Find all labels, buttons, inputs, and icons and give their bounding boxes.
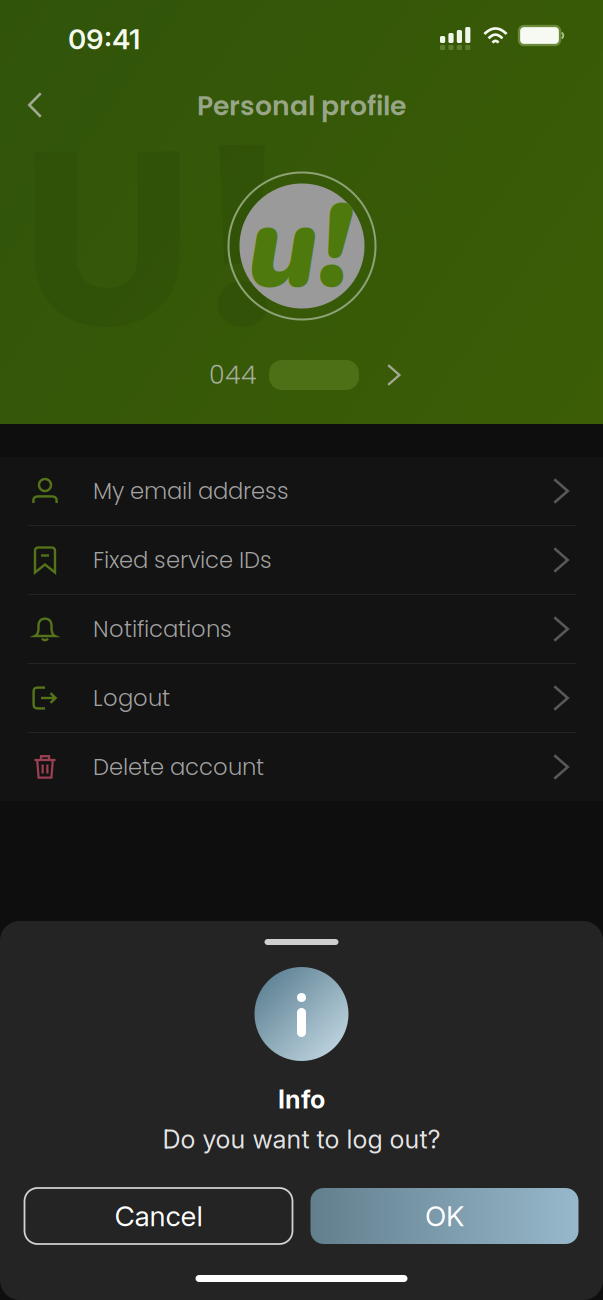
staticText: u!: [247, 168, 350, 328]
staticText: 09:41: [68, 22, 140, 56]
button[interactable]: Delete account: [0, 733, 603, 801]
button[interactable]: Back: [7, 79, 63, 131]
button[interactable]: Logout: [0, 664, 603, 732]
staticText: Fixed service IDs: [93, 544, 272, 576]
staticText: Notifications: [93, 613, 232, 645]
staticText: Delete account: [93, 751, 264, 783]
button[interactable]: Cancel: [24, 1188, 292, 1244]
staticText: 044: [209, 357, 257, 393]
staticText: Logout: [93, 682, 170, 714]
staticText: Cancel: [114, 1199, 202, 1233]
staticText: Do you want to log out?: [162, 1124, 440, 1155]
staticText: Personal profile: [197, 87, 406, 125]
button[interactable]: My email address: [0, 457, 603, 525]
button[interactable]: Notifications: [0, 595, 603, 663]
staticText: OK: [425, 1199, 464, 1233]
button[interactable]: OK: [310, 1188, 578, 1244]
staticText: My email address: [93, 475, 289, 507]
button[interactable]: 044: [209, 353, 400, 397]
button[interactable]: Fixed service IDs: [0, 526, 603, 594]
staticText: Info: [278, 1084, 325, 1115]
staticText: U!: [20, 66, 291, 411]
